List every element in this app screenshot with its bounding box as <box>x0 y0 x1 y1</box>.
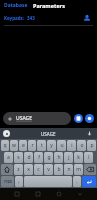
button[interactable]: h <box>54 152 63 163</box>
button[interactable]: USAGE <box>41 131 56 137</box>
staticText: i <box>71 142 73 149</box>
button[interactable]: v <box>44 164 53 175</box>
staticText: c <box>37 166 40 173</box>
button[interactable]: i <box>67 140 76 151</box>
staticText: g <box>47 154 51 161</box>
button[interactable]: Space <box>24 176 72 187</box>
staticText: USAGE <box>16 115 33 122</box>
staticText: 343 <box>27 15 35 21</box>
button[interactable]: e <box>19 140 27 151</box>
staticText: w <box>12 142 16 149</box>
button[interactable]: ?123 <box>1 176 14 187</box>
button[interactable]: l <box>84 152 93 163</box>
button[interactable]: Send <box>85 114 94 123</box>
staticText: u <box>60 142 64 149</box>
button[interactable]: t <box>37 140 46 151</box>
button[interactable]: Hide keyboard <box>76 190 84 198</box>
button[interactable]: a <box>4 152 13 163</box>
staticText: b <box>57 166 61 173</box>
staticText: s <box>17 154 20 161</box>
button[interactable]: Shift <box>1 164 13 175</box>
staticText: v <box>47 166 50 173</box>
button[interactable]: Voice <box>3 130 10 137</box>
staticText: x <box>27 166 30 173</box>
staticText: f <box>38 154 40 161</box>
staticText: k <box>77 154 80 161</box>
button[interactable]: d <box>24 152 33 163</box>
staticText: q <box>3 142 7 149</box>
button[interactable]: p <box>87 140 96 151</box>
button[interactable]: . <box>73 176 81 187</box>
button[interactable]: Back <box>55 190 63 198</box>
button[interactable]: q <box>1 140 9 151</box>
staticText: . <box>76 178 78 185</box>
staticText: Keypads: <box>4 15 25 21</box>
button[interactable]: Enter <box>82 176 96 187</box>
button[interactable]: b <box>54 164 63 175</box>
button[interactable]: c <box>34 164 43 175</box>
button[interactable]: j <box>64 152 73 163</box>
staticText: e <box>22 142 25 149</box>
button[interactable]: g <box>44 152 53 163</box>
button[interactable]: Backspace <box>84 164 96 175</box>
staticText: z <box>17 166 20 173</box>
staticText: l <box>88 154 90 161</box>
staticText: o <box>80 142 84 149</box>
button[interactable]: Expand <box>86 130 93 137</box>
staticText: d <box>27 154 31 161</box>
staticText: Parameters <box>33 2 65 9</box>
button[interactable]: k <box>74 152 83 163</box>
button[interactable]: Home <box>34 190 42 198</box>
staticText: r <box>31 142 34 149</box>
button[interactable]: s <box>14 152 23 163</box>
button[interactable]: m <box>74 164 83 175</box>
button[interactable]: r <box>28 140 36 151</box>
button[interactable]: , <box>15 176 23 187</box>
button[interactable]: USAGE <box>3 112 71 125</box>
button[interactable]: n <box>64 164 73 175</box>
button[interactable]: f <box>34 152 43 163</box>
button[interactable]: w <box>10 140 18 151</box>
button[interactable]: Account <box>82 13 92 23</box>
staticText: j <box>68 154 70 161</box>
staticText: Database <box>4 2 28 9</box>
staticText: h <box>57 154 61 161</box>
staticText: t <box>41 142 43 149</box>
button[interactable]: o <box>77 140 86 151</box>
staticText: a <box>7 154 10 161</box>
staticText: p <box>90 142 94 149</box>
button[interactable]: Recents <box>13 190 21 198</box>
button[interactable]: y <box>47 140 56 151</box>
staticText: m <box>76 166 81 173</box>
button[interactable]: z <box>14 164 23 175</box>
staticText: , <box>18 178 20 185</box>
staticText: n <box>67 166 71 173</box>
button[interactable]: Attach <box>74 114 83 123</box>
button[interactable]: x <box>24 164 33 175</box>
staticText: y <box>50 142 53 149</box>
button[interactable]: u <box>57 140 66 151</box>
staticText: ?123 <box>4 179 12 184</box>
